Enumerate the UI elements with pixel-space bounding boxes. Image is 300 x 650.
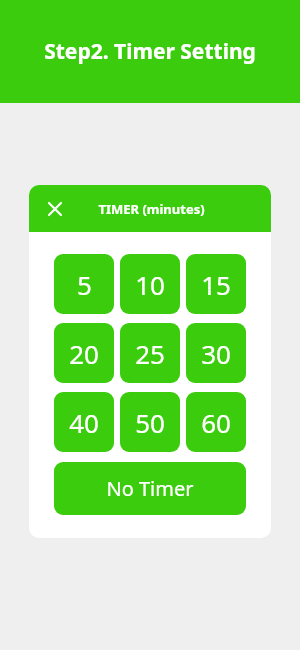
staticText: 15 (201, 267, 231, 302)
button[interactable]: 50 (120, 392, 180, 452)
staticText: 25 (135, 336, 165, 371)
button[interactable]: No Timer (54, 462, 246, 515)
staticText: Step2. Timer Setting (44, 37, 256, 66)
staticText: TIMER (minutes) (98, 200, 205, 218)
button[interactable]: Close (42, 196, 68, 222)
staticText: 40 (69, 405, 99, 440)
staticText: 50 (135, 405, 165, 440)
staticText: 30 (201, 336, 231, 371)
button[interactable]: 30 (186, 323, 246, 383)
staticText: 60 (201, 405, 231, 440)
button[interactable]: 40 (54, 392, 114, 452)
staticText: 20 (69, 336, 99, 371)
button[interactable]: 60 (186, 392, 246, 452)
button[interactable]: 15 (186, 254, 246, 314)
button[interactable]: 25 (120, 323, 180, 383)
staticText: 5 (77, 267, 92, 302)
button[interactable]: 5 (54, 254, 114, 314)
button[interactable]: 20 (54, 323, 114, 383)
button[interactable]: 10 (120, 254, 180, 314)
staticText: No Timer (106, 475, 194, 502)
staticText: 10 (135, 267, 165, 302)
